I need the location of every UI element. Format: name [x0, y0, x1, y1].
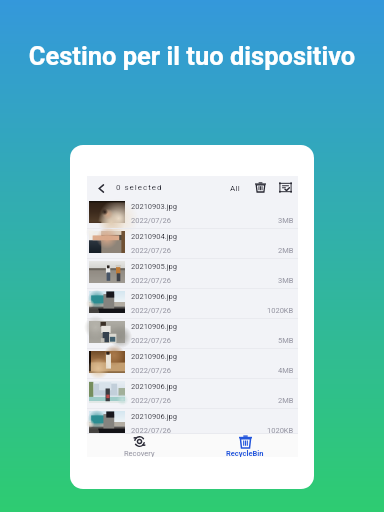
- staticText: 20210904.jpg: [131, 232, 177, 241]
- staticText: 20210906.jpg: [131, 292, 177, 301]
- staticText: 2022/07/26: [131, 276, 171, 285]
- staticText: 2022/07/26: [131, 396, 171, 405]
- button[interactable]: 20210903.jpg: [87, 199, 298, 229]
- staticText: 1020KB: [267, 426, 294, 435]
- button[interactable]: All: [225, 179, 245, 197]
- staticText: All: [230, 184, 241, 193]
- staticText: 20210903.jpg: [131, 202, 177, 211]
- button[interactable]: 20210904.jpg: [87, 229, 298, 259]
- staticText: 20210906.jpg: [131, 382, 177, 391]
- button[interactable]: 20210906.jpg: [87, 289, 298, 319]
- staticText: 5MB: [278, 336, 294, 345]
- staticText: 1020KB: [267, 306, 294, 315]
- staticText: 20210906.jpg: [131, 412, 177, 421]
- staticText: 20210906.jpg: [131, 322, 177, 331]
- staticText: 20210905.jpg: [131, 262, 177, 271]
- staticText: Recovery: [124, 449, 155, 457]
- staticText: 2022/07/26: [131, 306, 171, 315]
- staticText: 2022/07/26: [131, 426, 171, 435]
- staticText: 2MB: [278, 246, 294, 255]
- button[interactable]: 20210905.jpg: [87, 259, 298, 289]
- button[interactable]: 20210906.jpg: [87, 409, 298, 434]
- button[interactable]: 20210906.jpg: [87, 319, 298, 349]
- staticText: RecycleBin: [226, 449, 264, 457]
- button[interactable]: Recovery: [87, 434, 192, 457]
- staticText: 4MB: [278, 366, 294, 375]
- button[interactable]: RecycleBin: [192, 434, 298, 457]
- staticText: 2MB: [278, 396, 294, 405]
- staticText: 2022/07/26: [131, 366, 171, 375]
- button[interactable]: Select all: [276, 178, 294, 196]
- staticText: 0 selected: [116, 183, 163, 192]
- button[interactable]: 20210906.jpg: [87, 379, 298, 409]
- staticText: 2022/07/26: [131, 216, 171, 225]
- staticText: 3MB: [278, 276, 294, 285]
- staticText: 2022/07/26: [131, 336, 171, 345]
- staticText: 20210906.jpg: [131, 352, 177, 361]
- staticText: 2022/07/26: [131, 246, 171, 255]
- staticText: Cestino per il tuo dispositivo: [0, 41, 384, 71]
- button[interactable]: Back: [92, 179, 110, 197]
- staticText: 3MB: [278, 216, 294, 225]
- button[interactable]: 20210906.jpg: [87, 349, 298, 379]
- button[interactable]: Delete: [251, 178, 269, 196]
